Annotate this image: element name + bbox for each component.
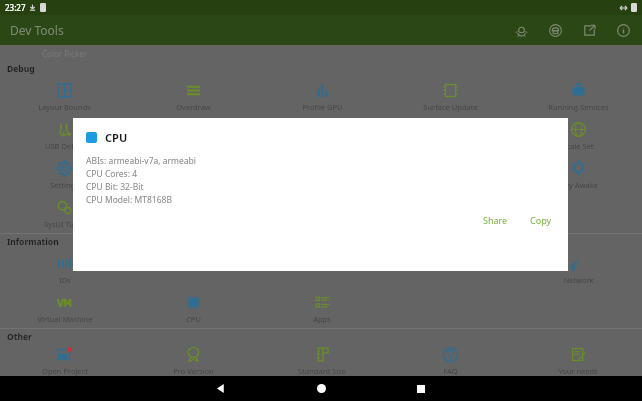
button[interactable]: Open external — [578, 19, 600, 41]
button[interactable]: Pointer — [386, 116, 514, 155]
button[interactable]: GPU — [129, 116, 258, 155]
staticText: Your needs — [558, 366, 598, 376]
button[interactable]: Recents — [401, 376, 441, 401]
button[interactable]: Search bug — [510, 19, 532, 41]
button[interactable]: CPU — [129, 289, 258, 328]
staticText: Scale Set — [562, 141, 594, 151]
staticText: CPU Cores: 4 — [86, 168, 138, 180]
button[interactable]: Pro Version — [129, 345, 258, 376]
staticText: Share — [483, 214, 508, 226]
staticText: Virtual Machine — [37, 314, 93, 324]
button[interactable]: Memory — [258, 116, 386, 155]
staticText: Surface Update — [423, 102, 478, 112]
button[interactable]: Running Services — [514, 77, 642, 116]
button[interactable]: SysUI Tuner — [0, 194, 129, 233]
button[interactable]: Scale Set — [514, 116, 642, 155]
button[interactable]: USB Debug — [0, 116, 129, 155]
button[interactable]: Stay Awake — [514, 155, 642, 194]
staticText: SysUI Tuner — [44, 219, 86, 229]
staticText: USB Debug — [45, 141, 85, 151]
button[interactable]: Surface Update — [386, 77, 514, 116]
button[interactable]: Home — [301, 376, 341, 401]
button[interactable]: Virtual Machine — [0, 289, 129, 328]
staticText: Copy — [530, 214, 552, 226]
button[interactable]: Open Project — [0, 345, 129, 376]
staticText: FAQ — [443, 366, 458, 376]
button[interactable]: Overdraw — [129, 77, 258, 116]
staticText: Information — [7, 236, 59, 248]
staticText: Color Picker — [42, 48, 88, 59]
staticText: Apps — [313, 314, 331, 324]
button[interactable]: Back — [201, 376, 241, 401]
staticText: Debug — [7, 63, 35, 75]
staticText: Profile GPU — [302, 102, 343, 112]
button[interactable]: Settings — [0, 155, 129, 194]
staticText: Pro Version — [173, 366, 214, 376]
button[interactable]: Copy — [528, 212, 554, 228]
button[interactable]: Your needs — [514, 345, 642, 376]
button[interactable]: Info — [612, 19, 634, 41]
button[interactable]: IDs — [0, 250, 129, 289]
button[interactable]: Network — [514, 250, 642, 289]
staticText: ABIs: armeabi-v7a, armeabi — [86, 155, 196, 167]
staticText: Dev Tools — [10, 22, 64, 38]
staticText: Open Project — [42, 366, 88, 376]
staticText: Other — [7, 331, 32, 343]
staticText: CPU — [105, 130, 128, 145]
staticText: Standard Size — [298, 366, 346, 376]
staticText: Running Services — [548, 102, 609, 112]
button[interactable]: Share — [481, 212, 510, 228]
staticText: CPU Model: MT8168B — [86, 194, 172, 206]
staticText: Layout Bounds — [38, 102, 91, 112]
button[interactable]: Standard Size — [258, 345, 386, 376]
staticText: IDs — [59, 275, 71, 285]
button[interactable]: Apps — [258, 289, 386, 328]
button[interactable]: FAQ — [386, 345, 514, 376]
staticText: Network — [563, 275, 594, 285]
staticText: CPU Bit: 32-Bit — [86, 181, 144, 193]
button[interactable]: Android — [544, 19, 566, 41]
button[interactable]: Layout Bounds — [0, 77, 129, 116]
staticText: Stay Awake — [558, 180, 598, 190]
staticText: Settings — [50, 180, 79, 190]
staticText: Overdraw — [176, 102, 211, 112]
staticText: 23:27 — [5, 2, 26, 13]
button[interactable]: Profile GPU — [258, 77, 386, 116]
staticText: CPU — [186, 314, 201, 324]
